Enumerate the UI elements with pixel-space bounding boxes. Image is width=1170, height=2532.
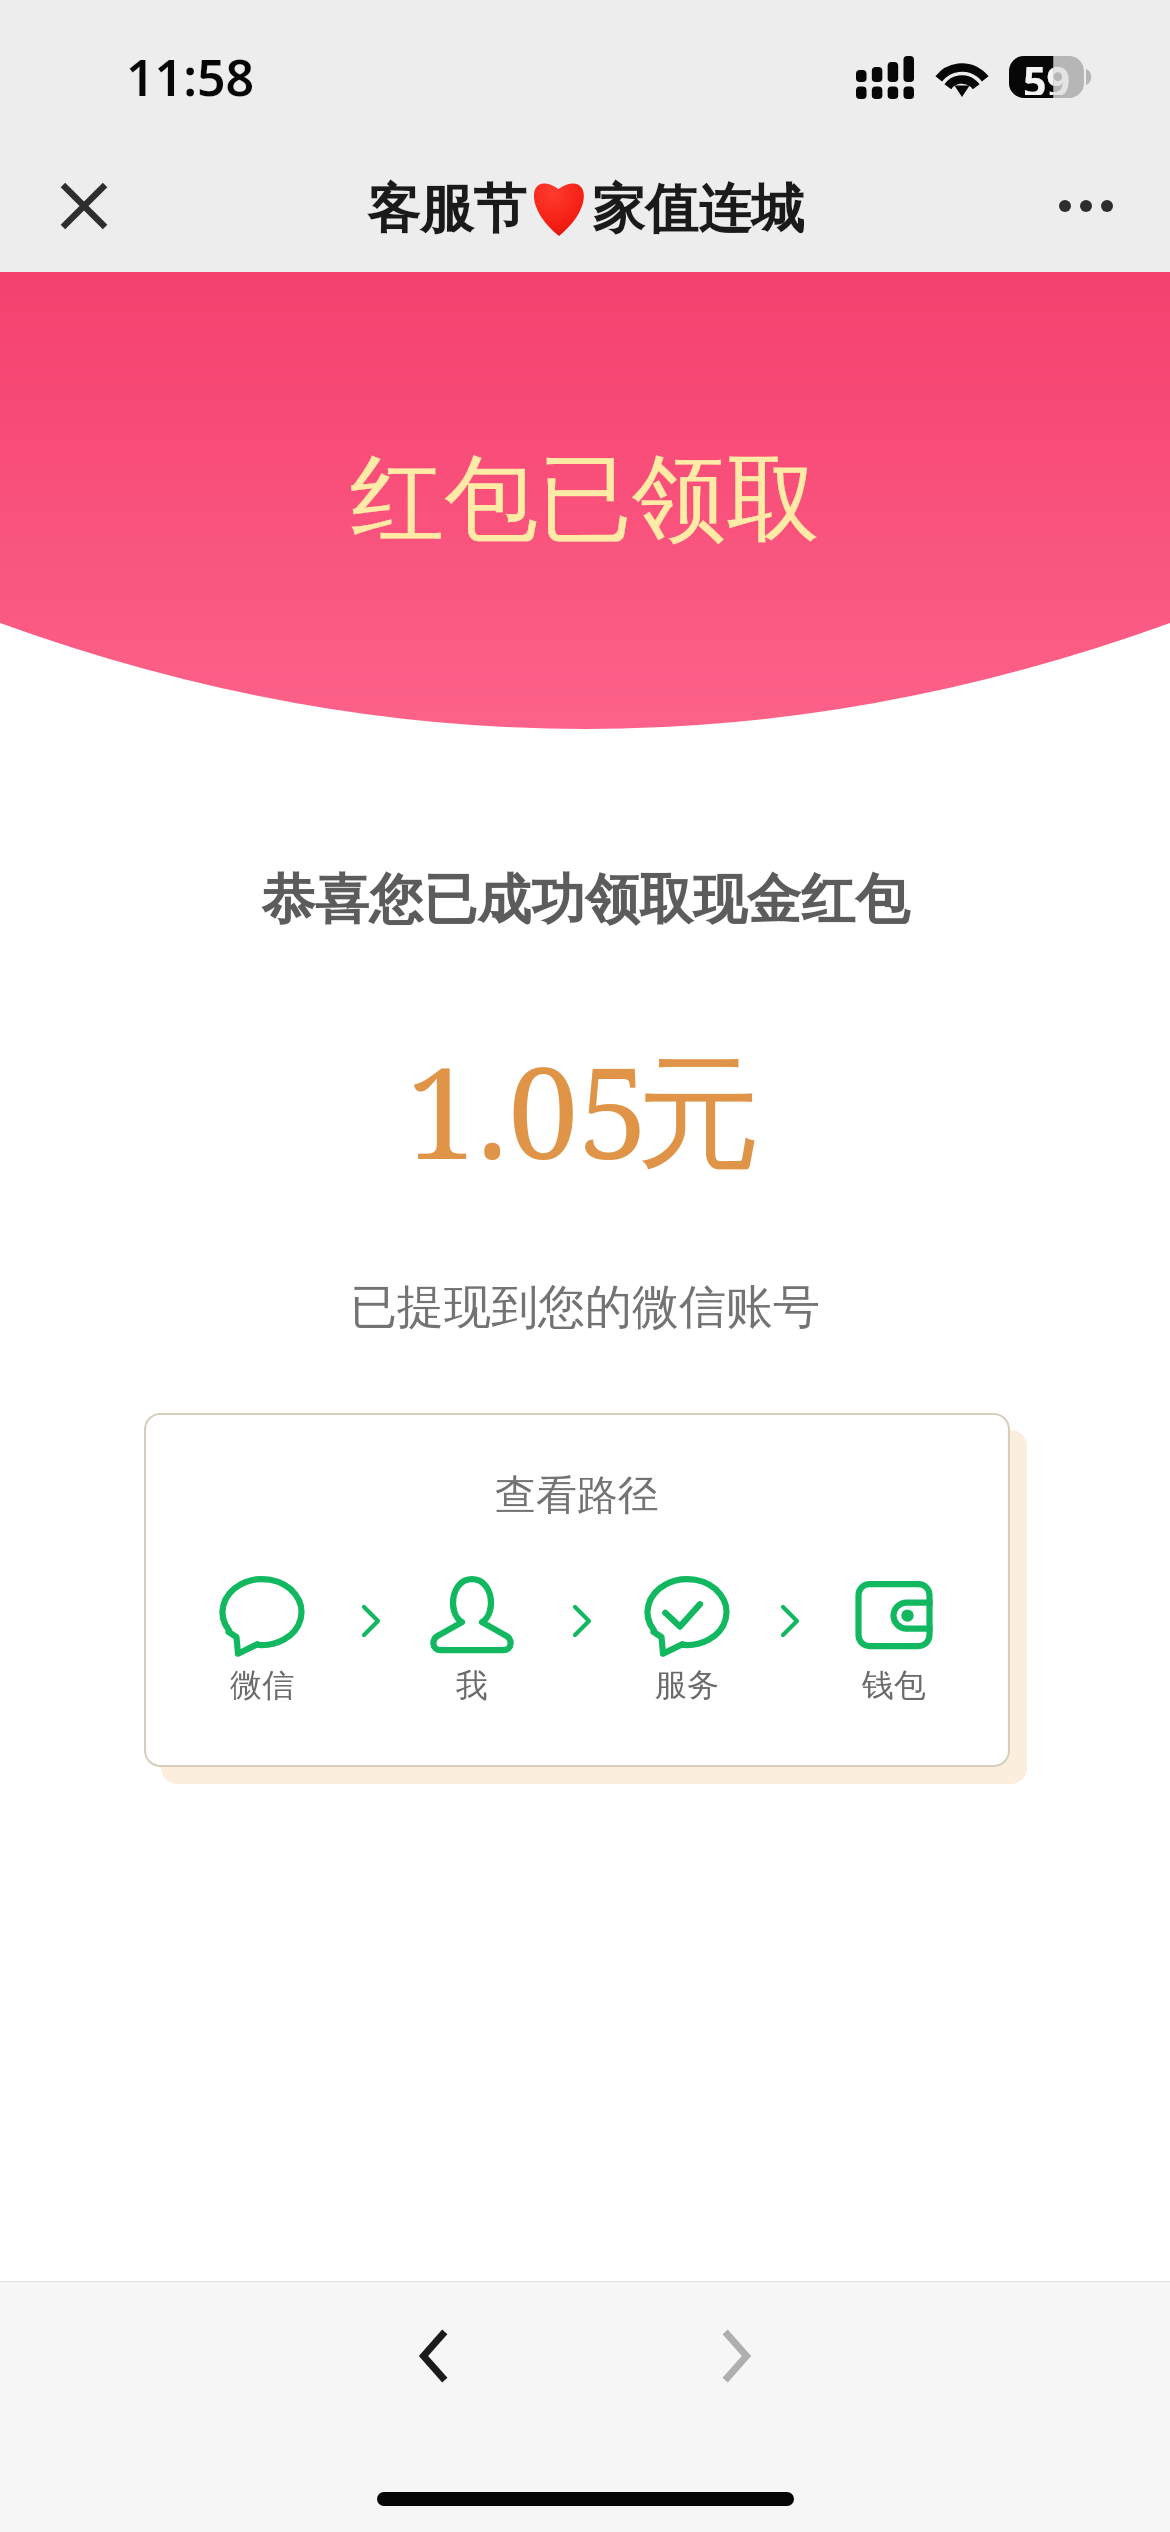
- button[interactable]: Forward: [702, 2321, 772, 2391]
- staticText: 59: [1023, 53, 1070, 95]
- staticText: 红包已领取: [350, 440, 820, 558]
- staticText: 我: [456, 1665, 488, 1705]
- staticText: 已提现到您的微信账号: [0, 1278, 1170, 1337]
- staticText: 59: [1023, 53, 1070, 95]
- button[interactable]: More options: [1041, 166, 1131, 246]
- staticText: 11:58: [126, 43, 255, 111]
- staticText: 微信: [230, 1665, 294, 1705]
- staticText: 客服节: [367, 176, 526, 243]
- staticText: 钱包: [862, 1665, 926, 1705]
- staticText: 恭喜您已成功领取现金红包: [0, 866, 1170, 934]
- button[interactable]: Close: [41, 163, 127, 249]
- button[interactable]: Back: [398, 2321, 468, 2391]
- staticText: 1.05: [406, 1024, 649, 1196]
- staticText: 查看路径: [144, 1470, 1010, 1522]
- staticText: 服务: [655, 1665, 719, 1705]
- staticText: 元: [637, 1037, 761, 1193]
- button[interactable]: 查看路径: [144, 1413, 1010, 1767]
- staticText: 家值连城: [592, 176, 804, 243]
